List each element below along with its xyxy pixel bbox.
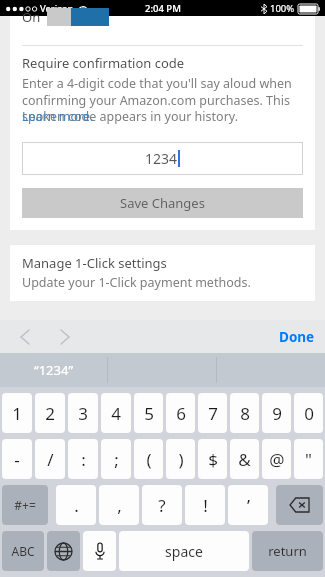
button[interactable]: ; xyxy=(101,439,131,479)
staticText: $ xyxy=(208,448,218,471)
button[interactable]: return xyxy=(252,531,323,571)
staticText: Save Changes xyxy=(120,194,205,212)
staticText: 1234 xyxy=(145,149,178,168)
button[interactable]: #+= xyxy=(2,485,48,525)
button[interactable]: & xyxy=(230,439,259,479)
button[interactable]: 9 xyxy=(262,393,291,433)
staticText: ABC xyxy=(11,543,35,559)
button[interactable]: Toggle on xyxy=(47,8,109,26)
staticText: 7 xyxy=(208,402,218,425)
staticText: " xyxy=(305,448,312,471)
staticText: On xyxy=(22,8,41,26)
button[interactable]: ? xyxy=(142,485,182,525)
staticText: , xyxy=(117,494,122,517)
staticText: 0 xyxy=(304,402,314,425)
staticText: Update your 1-Click payment methods. xyxy=(22,274,251,291)
button[interactable]: " xyxy=(294,439,323,479)
staticText: “1234” xyxy=(34,361,74,379)
button[interactable]: Change keyboard language xyxy=(47,531,80,571)
staticText: 5 xyxy=(144,402,154,425)
button[interactable]: 0 xyxy=(294,393,323,433)
button[interactable]: , xyxy=(99,485,139,525)
button[interactable]: 7 xyxy=(198,393,227,433)
staticText: : xyxy=(81,448,86,471)
button[interactable]: : xyxy=(68,439,98,479)
button[interactable]: 8 xyxy=(230,393,259,433)
staticText: Require confirmation code xyxy=(22,54,185,72)
staticText: - xyxy=(14,448,20,471)
button[interactable]: @ xyxy=(262,439,291,479)
button[interactable]: ) xyxy=(166,439,195,479)
staticText: 4 xyxy=(111,402,121,425)
staticText: 2:04 PM xyxy=(145,2,181,15)
staticText: Verizon xyxy=(40,2,74,15)
staticText: ! xyxy=(203,494,208,517)
staticText: . xyxy=(74,494,79,517)
button[interactable]: 1 xyxy=(2,393,32,433)
staticText: Enter a 4-digit code that you'll say alo… xyxy=(22,75,303,124)
button[interactable]: space xyxy=(119,531,249,571)
button[interactable]: ABC xyxy=(2,531,44,571)
staticText: Manage 1-Click settings xyxy=(22,254,167,272)
button[interactable]: 6 xyxy=(166,393,195,433)
staticText: ) xyxy=(178,448,184,471)
staticText: Done xyxy=(279,328,315,346)
button[interactable]: ! xyxy=(185,485,225,525)
button[interactable]: ’ xyxy=(228,485,268,525)
button[interactable]: ( xyxy=(134,439,163,479)
button[interactable]: Learn more. xyxy=(22,108,94,125)
staticText: 2 xyxy=(45,402,55,425)
button[interactable]: Manage 1-Click settings xyxy=(10,245,315,301)
staticText: space xyxy=(165,542,203,561)
button[interactable]: 1234 xyxy=(22,142,303,175)
button[interactable]: - xyxy=(2,439,32,479)
button[interactable]: . xyxy=(56,485,96,525)
staticText: ’ xyxy=(247,494,250,517)
staticText: return xyxy=(268,542,307,560)
button[interactable]: Backspace xyxy=(276,485,323,525)
staticText: 6 xyxy=(176,402,186,425)
button[interactable]: Save Changes xyxy=(22,188,303,218)
staticText: & xyxy=(238,448,251,471)
button[interactable]: Next field xyxy=(52,324,78,350)
button[interactable]: 4 xyxy=(101,393,131,433)
staticText: @ xyxy=(269,448,285,471)
button[interactable]: Previous field xyxy=(12,324,38,350)
staticText: ? xyxy=(158,494,166,517)
staticText: 8 xyxy=(240,402,250,425)
button[interactable]: 2 xyxy=(35,393,65,433)
staticText: 1 xyxy=(12,402,22,425)
button[interactable]: Dictate xyxy=(83,531,116,571)
button[interactable]: 3 xyxy=(68,393,98,433)
button[interactable]: / xyxy=(35,439,65,479)
staticText: ( xyxy=(146,448,152,471)
staticText: #+= xyxy=(14,497,36,513)
staticText: 100% xyxy=(270,2,295,15)
button[interactable]: “1234” xyxy=(0,353,107,387)
staticText: 9 xyxy=(272,402,282,425)
staticText: 3 xyxy=(78,402,88,425)
button[interactable]: $ xyxy=(198,439,227,479)
button[interactable]: Done xyxy=(279,328,315,346)
staticText: ; xyxy=(114,448,119,471)
button[interactable]: 5 xyxy=(134,393,163,433)
staticText: / xyxy=(47,448,54,471)
